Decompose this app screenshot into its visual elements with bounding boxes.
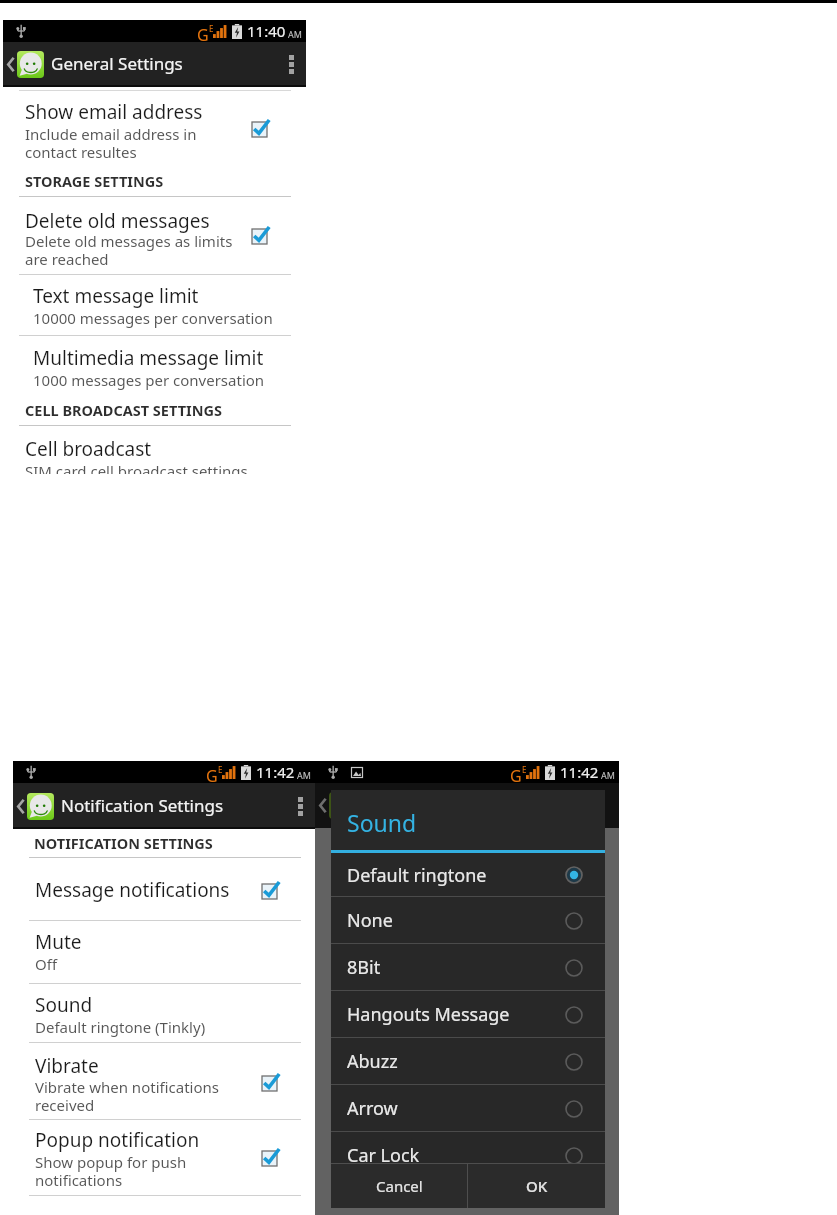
- staticText: Include email address in contact resulte…: [25, 124, 197, 163]
- staticText: 11:40: [247, 21, 286, 41]
- staticText: Vibrate: [35, 1053, 99, 1079]
- button[interactable]: Car Lock: [331, 1132, 605, 1179]
- staticText: E: [522, 764, 527, 775]
- staticText: Vibrate when notifications received: [35, 1077, 219, 1116]
- staticText: E: [209, 23, 214, 34]
- button[interactable]: Checkbox: [260, 1146, 282, 1168]
- button[interactable]: Checkbox: [250, 117, 272, 139]
- staticText: G: [206, 765, 218, 782]
- staticText: Delete old messages as limits are reache…: [25, 231, 233, 270]
- staticText: Show email address: [25, 99, 203, 125]
- staticText: 11:42: [256, 762, 295, 782]
- staticText: None: [347, 908, 393, 933]
- staticText: Default ringtone: [347, 863, 487, 888]
- staticText: Car Lock: [347, 1143, 420, 1168]
- staticText: 8Bit: [347, 955, 381, 980]
- staticText: SIM card cell broadcast settings: [25, 461, 248, 474]
- staticText: AM: [288, 28, 302, 40]
- staticText: E: [218, 764, 223, 775]
- staticText: G: [197, 24, 209, 41]
- staticText: Sound: [35, 992, 93, 1018]
- staticText: CELL BROADCAST SETTINGS: [25, 400, 222, 420]
- button[interactable]: Checkbox: [260, 1071, 282, 1093]
- button[interactable]: Default ringtone: [331, 853, 605, 897]
- staticText: Delete old messages: [25, 208, 210, 234]
- staticText: Cell broadcast: [25, 436, 152, 462]
- staticText: Popup notification: [35, 1127, 200, 1153]
- staticText: Multimedia message limit: [33, 345, 264, 371]
- button[interactable]: Checkbox: [250, 224, 272, 246]
- staticText: Notification Settings: [61, 794, 224, 817]
- button[interactable]: Checkbox: [260, 879, 282, 901]
- button[interactable]: Notification Settings: [13, 783, 315, 829]
- staticText: 1000 messages per conversation: [33, 370, 265, 390]
- staticText: NOTIFICATION SETTINGS: [34, 833, 213, 853]
- button[interactable]: Cancel: [331, 1164, 467, 1208]
- staticText: AM: [297, 769, 311, 781]
- button[interactable]: 8Bit: [331, 944, 605, 991]
- button[interactable]: Abuzz: [331, 1038, 605, 1085]
- staticText: 11:42: [560, 762, 599, 782]
- staticText: STORAGE SETTINGS: [25, 171, 164, 191]
- button[interactable]: OK: [468, 1164, 605, 1208]
- staticText: Text message limit: [33, 283, 199, 309]
- staticText: Show popup for push notifications: [35, 1152, 187, 1191]
- staticText: Cancel: [376, 1176, 423, 1196]
- staticText: G: [510, 765, 522, 782]
- staticText: General Settings: [51, 52, 183, 75]
- button[interactable]: Arrow: [331, 1085, 605, 1132]
- button[interactable]: None: [331, 897, 605, 944]
- button[interactable]: Hangouts Message: [331, 991, 605, 1038]
- staticText: 10000 messages per conversation: [33, 308, 273, 328]
- button[interactable]: More options: [276, 42, 306, 87]
- staticText: Message notifications: [35, 877, 230, 903]
- staticText: Mute: [35, 929, 82, 955]
- staticText: Hangouts Message: [347, 1002, 510, 1027]
- staticText: AM: [601, 769, 615, 781]
- staticText: OK: [526, 1176, 548, 1196]
- staticText: Off: [35, 954, 58, 974]
- staticText: Sound: [347, 807, 417, 838]
- staticText: Default ringtone (Tinkly): [35, 1017, 206, 1037]
- staticText: Abuzz: [347, 1049, 398, 1074]
- button[interactable]: More options: [285, 783, 315, 829]
- button[interactable]: General Settings: [3, 42, 306, 87]
- staticText: Arrow: [347, 1096, 398, 1121]
